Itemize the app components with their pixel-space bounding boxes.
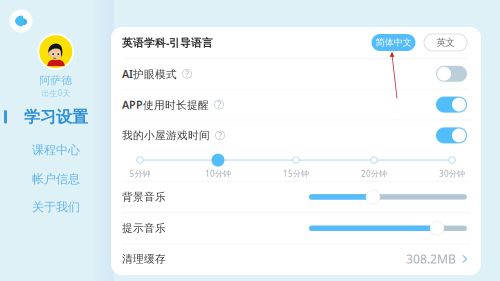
- button[interactable]: 课程中心: [0, 141, 112, 159]
- button[interactable]: 清理缓存: [111, 244, 481, 273]
- staticText: ?: [217, 98, 221, 111]
- button[interactable]: AI护眼模式: [111, 59, 481, 89]
- button[interactable]: 提示音乐: [111, 213, 481, 244]
- button[interactable]: 我的小屋游戏时间: [111, 120, 481, 150]
- staticText: APP使用时长提醒: [122, 97, 209, 112]
- staticText: 英文: [436, 37, 454, 48]
- staticText: 背景音乐: [122, 190, 166, 203]
- staticText: 提示音乐: [122, 222, 166, 235]
- staticText: 308.2MB: [406, 251, 456, 267]
- staticText: AI护眼模式: [122, 67, 177, 81]
- staticText: 30分钟: [439, 168, 465, 179]
- button[interactable]: 帐户信息: [0, 170, 112, 188]
- staticText: 出生0天: [41, 88, 70, 98]
- button[interactable]: 背景音乐: [111, 182, 481, 212]
- button[interactable]: 英文: [424, 34, 467, 51]
- staticText: 课程中心: [32, 143, 80, 157]
- staticText: 10分钟: [205, 168, 231, 179]
- staticText: 阿萨德: [39, 74, 72, 87]
- staticText: 5分钟: [129, 168, 150, 179]
- staticText: ?: [218, 129, 222, 142]
- staticText: 清理缓存: [122, 252, 166, 265]
- button[interactable]: 简体中文: [371, 34, 415, 51]
- button[interactable]: APP使用时长提醒: [111, 90, 481, 120]
- staticText: 20分钟: [361, 168, 387, 179]
- button[interactable]: Back: [9, 9, 32, 32]
- staticText: 学习设置: [24, 107, 88, 127]
- staticText: ?: [185, 68, 189, 80]
- staticText: 帐户信息: [32, 172, 80, 186]
- staticText: 简体中文: [375, 37, 411, 48]
- staticText: 15分钟: [283, 168, 309, 179]
- staticText: 英语学科-引导语言: [122, 35, 213, 50]
- button[interactable]: 关于我们: [0, 198, 112, 216]
- staticText: 我的小屋游戏时间: [122, 129, 210, 142]
- staticText: 关于我们: [32, 200, 80, 214]
